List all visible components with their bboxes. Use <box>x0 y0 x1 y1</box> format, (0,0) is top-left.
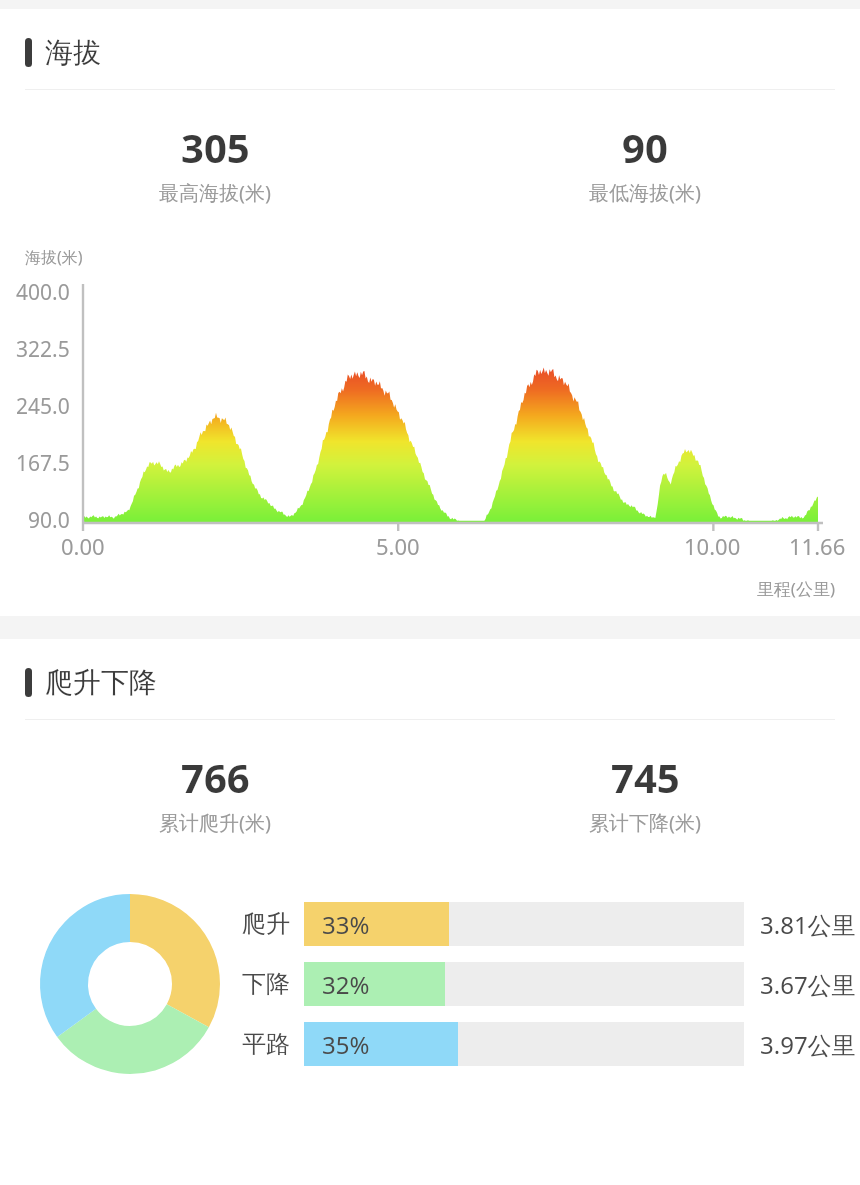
staticText: 3.81公里 <box>760 908 856 941</box>
staticText: 90 <box>622 120 668 174</box>
staticText: 10.00 <box>684 531 741 561</box>
staticText: 累计下降(米) <box>589 809 701 836</box>
staticText: 745 <box>611 750 680 804</box>
staticText: 3.67公里 <box>760 968 856 1001</box>
staticText: 33% <box>322 908 370 941</box>
staticText: 167.5 <box>16 449 70 478</box>
button[interactable]: 766 <box>0 750 430 836</box>
staticText: 35% <box>322 1028 370 1061</box>
button[interactable]: 305 <box>0 120 430 206</box>
staticText: 400.0 <box>16 278 70 307</box>
staticText: 下降 <box>242 969 290 999</box>
staticText: 里程(公里) <box>0 577 835 600</box>
staticText: 最低海拔(米) <box>589 179 701 206</box>
staticText: 平路 <box>242 1029 290 1059</box>
button[interactable]: 下降 <box>242 962 860 1006</box>
staticText: 5.00 <box>376 531 420 561</box>
button[interactable]: 海拔 <box>0 35 860 70</box>
staticText: 0.00 <box>61 531 105 561</box>
staticText: 90.0 <box>28 506 70 535</box>
staticText: 最高海拔(米) <box>159 179 271 206</box>
staticText: 爬升 <box>242 909 290 939</box>
staticText: 245.0 <box>16 392 70 421</box>
staticText: 11.66 <box>789 531 846 561</box>
staticText: 766 <box>181 750 250 804</box>
staticText: 海拔 <box>45 35 101 70</box>
staticText: 爬升下降 <box>45 665 157 700</box>
staticText: 海拔(米) <box>25 246 83 268</box>
staticText: 305 <box>181 120 250 174</box>
button[interactable]: 90 <box>430 120 860 206</box>
staticText: 32% <box>322 968 370 1001</box>
button[interactable]: 爬升 <box>242 902 860 946</box>
staticText: 累计爬升(米) <box>159 809 271 836</box>
staticText: 3.97公里 <box>760 1028 856 1061</box>
button[interactable]: 平路 <box>242 1022 860 1066</box>
staticText: 322.5 <box>16 335 70 364</box>
button[interactable]: 爬升下降占比环形图 <box>40 894 220 1074</box>
button[interactable]: 745 <box>430 750 860 836</box>
button[interactable]: 爬升下降 <box>0 665 860 700</box>
